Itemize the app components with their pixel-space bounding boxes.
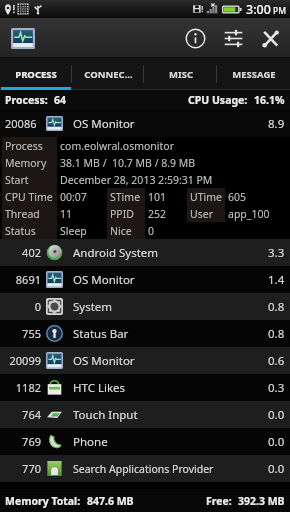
staticText: User (190, 207, 213, 221)
staticText: 101 (148, 190, 167, 204)
button[interactable]: 20086 (0, 110, 290, 137)
staticText: 769 (22, 434, 41, 449)
staticText: 0.6 (268, 353, 285, 369)
staticText: 402 (22, 245, 41, 260)
button[interactable]: 764 (0, 401, 290, 428)
staticText: Android System (73, 245, 159, 261)
staticText: CPU Time (5, 190, 53, 204)
button[interactable]: Settings (214, 19, 252, 57)
staticText: 3:00 (246, 1, 271, 18)
button[interactable]: 755 (0, 320, 290, 347)
staticText: Status Bar (73, 326, 129, 342)
staticText: 8.9 (268, 116, 285, 132)
staticText: Memory (5, 156, 47, 170)
staticText: Nice (110, 224, 132, 238)
button[interactable]: Info (176, 19, 214, 57)
staticText: 0 (34, 299, 41, 314)
staticText: System (73, 299, 113, 315)
staticText: 0.0 (268, 434, 285, 450)
staticText: Touch Input (73, 407, 138, 423)
staticText: OS Monitor (73, 116, 135, 132)
staticText: PM (273, 5, 286, 17)
staticText: 20099 (9, 353, 41, 368)
staticText: 605 (228, 190, 247, 204)
staticText: HTC Likes (73, 380, 126, 396)
staticText: Thread (5, 207, 40, 221)
staticText: 764 (22, 407, 41, 422)
staticText: 0.3 (268, 380, 285, 396)
staticText: Phone (73, 434, 108, 450)
button[interactable]: 20099 (0, 347, 290, 374)
staticText: 0 (148, 224, 155, 238)
staticText: com.eolwral.osmonitor (60, 139, 175, 153)
staticText: 00:07 (60, 190, 87, 204)
button[interactable]: 402 (0, 239, 290, 266)
button[interactable]: Tools (252, 19, 288, 57)
staticText: Status (5, 224, 36, 238)
staticText: Search Applications Provider (73, 462, 214, 476)
staticText: STime (110, 190, 141, 204)
staticText: MISC (169, 68, 193, 81)
staticText: 16.1% (254, 93, 285, 107)
staticText: 8691 (15, 272, 41, 287)
staticText: 755 (22, 326, 41, 341)
staticText: CPU Usage: (188, 93, 248, 107)
staticText: 392.3 MB (238, 494, 285, 508)
staticText: MESSAGE (232, 68, 276, 81)
staticText: Free: (206, 494, 232, 508)
staticText: December 28, 2013 2:59:31 PM (60, 173, 213, 187)
staticText: app_100 (228, 207, 270, 221)
staticText: PPID (110, 207, 134, 221)
staticText: 64 (54, 93, 67, 107)
button[interactable]: 770 (0, 455, 290, 482)
button[interactable]: 8691 (0, 266, 290, 293)
staticText: 0.8 (268, 326, 285, 342)
staticText: 847.6 MB (87, 494, 134, 508)
button[interactable]: 769 (0, 428, 290, 455)
staticText: 11 (60, 207, 73, 221)
staticText: 252 (148, 207, 167, 221)
button[interactable]: CONNEC... (72, 58, 144, 90)
button[interactable]: 0 (0, 293, 290, 320)
staticText: 0.0 (268, 407, 285, 423)
staticText: 20086 (5, 116, 37, 131)
staticText: Start (5, 173, 29, 187)
staticText: 0.0 (268, 461, 285, 477)
button[interactable]: 1182 (0, 374, 290, 401)
button[interactable]: OS Monitor (6, 21, 40, 55)
staticText: 1182 (15, 380, 41, 395)
staticText: Memory Total: (5, 494, 81, 508)
staticText: 3.3 (268, 245, 285, 261)
staticText: Process: (5, 93, 48, 107)
staticText: CONNEC... (84, 68, 133, 81)
staticText: 0.8 (268, 299, 285, 315)
staticText: 770 (22, 461, 41, 476)
staticText: OS Monitor (73, 353, 135, 369)
staticText: 1.4 (268, 272, 285, 288)
staticText: Sleep (60, 224, 87, 238)
button[interactable]: MISC (144, 58, 217, 90)
staticText: UTime (190, 190, 222, 204)
staticText: Process (5, 139, 43, 153)
button[interactable]: PROCESS (0, 58, 72, 90)
staticText: OS Monitor (73, 272, 135, 288)
button[interactable]: MESSAGE (217, 58, 290, 90)
staticText: 38.1 MB / 10.7 MB / 8.9 MB (60, 156, 196, 170)
staticText: PROCESS (15, 68, 57, 81)
